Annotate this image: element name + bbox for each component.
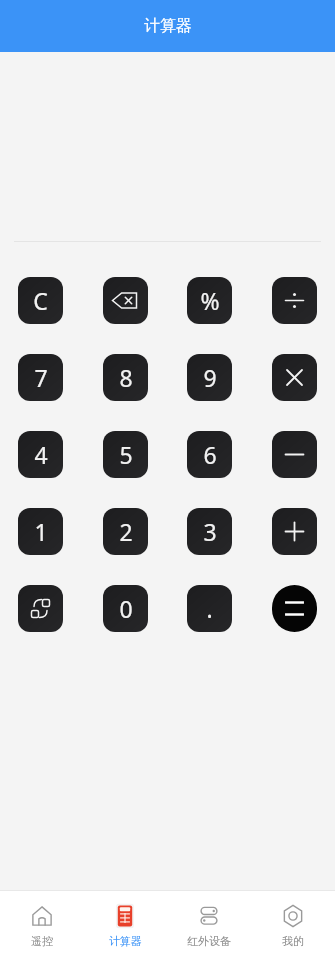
button[interactable]: Convert <box>18 585 63 632</box>
staticText: 2 <box>119 516 133 547</box>
staticText: 我的 <box>282 934 304 948</box>
staticText: 遥控 <box>31 934 53 948</box>
button[interactable]: % <box>187 277 232 324</box>
staticText: 9 <box>203 362 217 393</box>
button[interactable]: 0 <box>103 585 148 632</box>
staticText: % <box>200 285 220 316</box>
staticText: 4 <box>34 439 48 470</box>
staticText: 5 <box>119 439 133 470</box>
button[interactable]: 5 <box>103 431 148 478</box>
button[interactable]: 7 <box>18 354 63 401</box>
button[interactable]: Divide <box>272 277 317 324</box>
staticText: 1 <box>34 516 48 547</box>
staticText: 计算器 <box>109 934 142 948</box>
button[interactable]: 遥控 <box>0 891 83 969</box>
staticText: 红外设备 <box>187 934 231 948</box>
button[interactable]: 3 <box>187 508 232 555</box>
button[interactable]: 4 <box>18 431 63 478</box>
staticText: 7 <box>34 362 48 393</box>
button[interactable]: 我的 <box>251 891 335 969</box>
staticText: . <box>206 593 213 624</box>
staticText: 3 <box>203 516 217 547</box>
button[interactable]: C <box>18 277 63 324</box>
staticText: 计算器 <box>144 16 192 36</box>
staticText: 0 <box>119 593 133 624</box>
button[interactable]: 红外设备 <box>167 891 251 969</box>
button[interactable]: . <box>187 585 232 632</box>
staticText: C <box>33 285 48 316</box>
button[interactable]: Minus <box>272 431 317 478</box>
staticText: 8 <box>119 362 133 393</box>
button[interactable]: 8 <box>103 354 148 401</box>
button[interactable]: 6 <box>187 431 232 478</box>
button[interactable]: Plus <box>272 508 317 555</box>
staticText: 6 <box>203 439 217 470</box>
button[interactable]: 计算器 <box>83 891 167 969</box>
button[interactable]: Backspace <box>103 277 148 324</box>
button[interactable]: Multiply <box>272 354 317 401</box>
button[interactable]: Equals <box>272 585 317 632</box>
button[interactable]: 1 <box>18 508 63 555</box>
button[interactable]: 9 <box>187 354 232 401</box>
button[interactable]: 2 <box>103 508 148 555</box>
